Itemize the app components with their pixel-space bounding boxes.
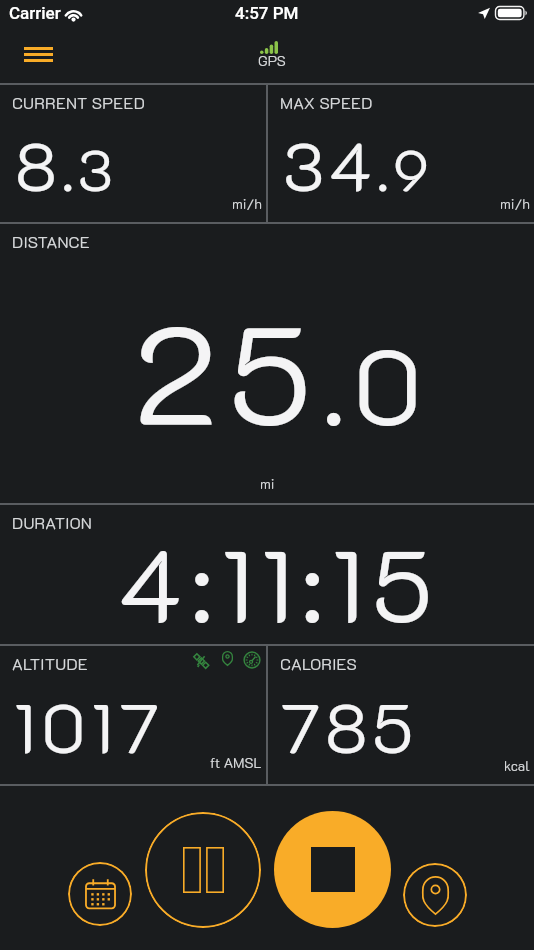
staticText: CALORIES xyxy=(280,653,357,674)
staticText: 25.0 xyxy=(134,280,430,459)
button[interactable]: History xyxy=(68,862,132,926)
button[interactable]: Stop xyxy=(274,811,391,928)
staticText: 4:11:15 xyxy=(118,517,441,647)
staticText: 34.9 xyxy=(283,121,433,208)
button[interactable]: Pause xyxy=(145,812,261,928)
staticText: mi/h xyxy=(500,194,530,212)
staticText: 4:57 PM xyxy=(235,3,299,23)
staticText: Carrier xyxy=(9,3,61,23)
staticText: mi/h xyxy=(232,194,262,212)
staticText: 785 xyxy=(280,682,418,770)
button[interactable]: Menu xyxy=(12,34,65,74)
button[interactable]: GPS signal xyxy=(243,33,291,81)
staticText: CURRENT SPEED xyxy=(12,92,146,113)
staticText: GPS xyxy=(258,51,286,69)
staticText: mi xyxy=(260,474,275,492)
staticText: 8.3 xyxy=(15,121,117,208)
staticText: ALTITUDE xyxy=(12,653,88,674)
staticText: 1017 xyxy=(14,682,166,770)
staticText: DISTANCE xyxy=(12,231,90,252)
button[interactable]: Map xyxy=(403,863,467,927)
staticText: DURATION xyxy=(12,512,92,533)
staticText: ft AMSL xyxy=(210,753,262,771)
staticText: kcal xyxy=(504,756,530,774)
staticText: MAX SPEED xyxy=(280,92,373,113)
